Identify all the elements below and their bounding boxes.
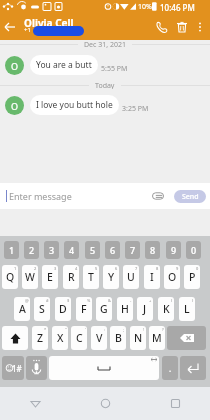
button[interactable]: Delete	[172, 17, 192, 37]
button[interactable]	[2, 326, 28, 350]
button[interactable]: 8	[145, 241, 160, 259]
button[interactable]: Home	[70, 387, 140, 420]
staticText: 5:55 PM	[101, 64, 128, 74]
button[interactable]: X	[52, 326, 68, 350]
button[interactable]: N	[130, 326, 146, 350]
button[interactable]	[26, 356, 47, 380]
button[interactable]: S	[34, 297, 50, 321]
button[interactable]: E	[42, 265, 58, 289]
button[interactable]: B	[110, 326, 126, 350]
staticText: +1	[24, 26, 31, 34]
button[interactable]: D	[55, 297, 71, 321]
button[interactable]: 1	[4, 241, 19, 259]
staticText: &	[108, 298, 111, 303]
staticText: 6	[110, 244, 116, 256]
staticText: 1#	[12, 363, 22, 374]
button[interactable]: You are a butt	[30, 55, 98, 75]
staticText: K	[163, 302, 170, 316]
staticText: O	[11, 100, 19, 112]
button[interactable]: T	[83, 265, 99, 289]
staticText: W	[25, 270, 35, 284]
button[interactable]: 3	[44, 241, 59, 259]
staticText: O	[168, 270, 177, 284]
staticText: 2	[29, 244, 35, 256]
button[interactable]: H	[117, 297, 133, 321]
staticText: 3:25 PM	[122, 104, 149, 114]
staticText: F	[81, 302, 87, 316]
staticText: E	[47, 270, 53, 284]
button[interactable]: Call	[152, 17, 172, 37]
staticText: *	[44, 327, 47, 332]
staticText: G	[100, 302, 108, 316]
staticText: D	[59, 302, 67, 316]
staticText: Q	[6, 270, 15, 284]
staticText: 0	[196, 266, 199, 271]
button[interactable]: M	[149, 326, 165, 350]
button[interactable]: .	[162, 356, 178, 380]
staticText: +	[149, 298, 152, 303]
button[interactable]: 1#	[2, 356, 24, 380]
staticText: 8	[156, 266, 159, 271]
staticText: 10%	[138, 2, 152, 12]
staticText: $	[67, 298, 70, 303]
button[interactable]	[180, 356, 206, 380]
button[interactable]: Y	[103, 265, 119, 289]
staticText: B	[115, 331, 122, 345]
staticText: ?	[162, 327, 164, 332]
button[interactable]: 4	[64, 241, 79, 259]
staticText: "	[65, 327, 67, 332]
staticText: 5	[90, 244, 96, 256]
staticText: %	[87, 298, 91, 303]
button[interactable]: P	[184, 265, 200, 289]
staticText: Z	[37, 331, 44, 345]
staticText: Today	[95, 81, 115, 89]
staticText: 9	[171, 244, 177, 256]
button[interactable]: K	[158, 297, 174, 321]
button[interactable]: 9	[166, 241, 181, 259]
button[interactable]: G	[96, 297, 112, 321]
staticText: A	[19, 302, 26, 316]
button[interactable]: A	[14, 297, 30, 321]
button[interactable]: 2	[24, 241, 39, 259]
staticText: Dec 31, 2021	[84, 40, 126, 48]
button[interactable]: O	[164, 265, 180, 289]
button[interactable]: F	[76, 297, 92, 321]
button[interactable]: Z	[32, 326, 48, 350]
button[interactable]: I love you butt hole	[30, 95, 119, 115]
button[interactable]: C	[71, 326, 87, 350]
button[interactable]: 6	[105, 241, 120, 259]
button[interactable]: 0	[186, 241, 201, 259]
button[interactable]: Send	[174, 190, 206, 203]
staticText: Send	[182, 192, 199, 202]
button[interactable]: Recent apps	[140, 387, 210, 420]
button[interactable]: V	[91, 326, 107, 350]
staticText: U	[127, 270, 135, 284]
button[interactable]: W	[22, 265, 38, 289]
button[interactable]: 7	[125, 241, 140, 259]
button[interactable]: More options	[192, 19, 208, 35]
staticText: M	[152, 331, 162, 345]
staticText: J	[143, 302, 147, 316]
button[interactable]	[167, 326, 206, 350]
staticText: N	[134, 331, 143, 345]
staticText: -	[130, 298, 132, 303]
button[interactable]: Back	[0, 17, 20, 37]
staticText: H	[121, 302, 129, 316]
staticText: 5	[95, 266, 98, 271]
button[interactable]: U	[123, 265, 139, 289]
staticText: @	[25, 298, 29, 303]
button[interactable]: Q	[2, 265, 18, 289]
staticText: 1	[14, 266, 17, 271]
button[interactable]: Back	[0, 387, 70, 420]
button[interactable]: R	[63, 265, 79, 289]
staticText: X	[57, 331, 64, 345]
button[interactable]: Attach file	[148, 186, 168, 206]
staticText: ;	[123, 327, 125, 332]
button[interactable]: I	[144, 265, 160, 289]
button[interactable]: J	[137, 297, 153, 321]
staticText: 8	[150, 244, 156, 256]
button[interactable]: L	[179, 297, 195, 321]
button[interactable]	[49, 356, 159, 380]
staticText: #	[46, 298, 49, 303]
button[interactable]: 5	[85, 241, 100, 259]
